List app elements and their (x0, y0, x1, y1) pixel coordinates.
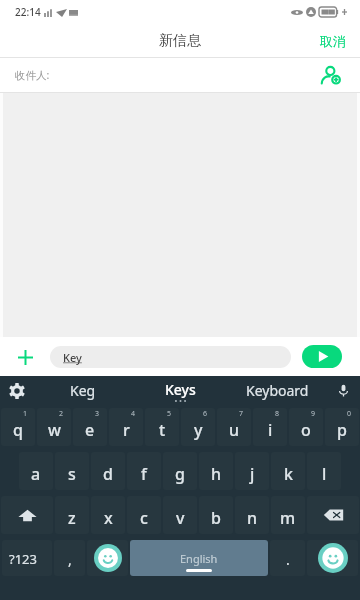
staticText: b (211, 507, 221, 529)
button[interactable]: r (109, 408, 143, 446)
button[interactable]: k (271, 452, 305, 490)
staticText: o (301, 419, 311, 441)
staticText: 6 (203, 409, 208, 419)
staticText: n (247, 507, 258, 529)
staticText: 7 (239, 409, 244, 419)
staticText: 1 (23, 409, 28, 419)
staticText: Keyboard (246, 381, 309, 400)
staticText: f (141, 463, 147, 485)
button[interactable]: Emoji picker (307, 540, 358, 576)
button[interactable]: p (325, 408, 359, 446)
button[interactable]: Keyboard (229, 376, 326, 405)
button[interactable]: Send (302, 345, 342, 368)
staticText: x (104, 507, 113, 529)
button[interactable]: o (289, 408, 323, 446)
button[interactable]: m (271, 496, 305, 534)
button[interactable]: English (130, 540, 268, 576)
staticText: j (250, 463, 255, 485)
staticText: r (123, 419, 130, 441)
button[interactable]: t (145, 408, 179, 446)
staticText: 2 (59, 409, 64, 419)
button[interactable]: Add attachment (10, 342, 40, 372)
staticText: i (268, 419, 273, 441)
button[interactable]: x (91, 496, 125, 534)
staticText: Key (63, 350, 82, 365)
button[interactable]: w (37, 408, 71, 446)
staticText: u (229, 419, 240, 441)
staticText: 取消 (320, 33, 346, 49)
button[interactable]: q (1, 408, 35, 446)
staticText: v (176, 507, 185, 529)
button[interactable]: , (54, 540, 85, 576)
button[interactable]: a (19, 452, 53, 490)
staticText: e (85, 419, 95, 441)
staticText: t (159, 419, 166, 441)
staticText: 新信息 (159, 32, 201, 50)
staticText: 3 (95, 409, 100, 419)
button[interactable]: Emoji (87, 540, 128, 576)
staticText: 8 (275, 409, 280, 419)
button[interactable]: s (55, 452, 89, 490)
button[interactable]: . (270, 540, 305, 576)
button[interactable]: Shift (1, 496, 53, 534)
button[interactable]: 取消 (306, 24, 360, 57)
staticText: Keys (165, 380, 196, 399)
staticText: w (48, 419, 61, 441)
button[interactable]: y (181, 408, 215, 446)
staticText: g (175, 463, 185, 485)
staticText: 5 (167, 409, 172, 419)
button[interactable]: d (91, 452, 125, 490)
staticText: Keg (70, 381, 96, 400)
button[interactable]: Add recipient (306, 58, 360, 92)
staticText: English (180, 551, 218, 566)
staticText: l (322, 463, 327, 485)
button[interactable]: i (253, 408, 287, 446)
staticText: a (31, 463, 41, 485)
staticText: ?123 (9, 550, 37, 568)
button[interactable]: z (55, 496, 89, 534)
button[interactable]: n (235, 496, 269, 534)
staticText: s (68, 463, 76, 485)
staticText: p (337, 419, 347, 441)
button[interactable]: Backspace (307, 496, 359, 534)
staticText: . (286, 550, 290, 569)
button[interactable]: e (73, 408, 107, 446)
button[interactable]: g (163, 452, 197, 490)
button[interactable]: c (127, 496, 161, 534)
button[interactable]: Key (50, 346, 291, 368)
staticText: , (68, 550, 72, 569)
staticText: m (280, 507, 296, 529)
button[interactable]: f (127, 452, 161, 490)
button[interactable]: ?123 (2, 540, 52, 576)
button[interactable]: v (163, 496, 197, 534)
staticText: z (68, 507, 76, 529)
button[interactable]: b (199, 496, 233, 534)
button[interactable]: l (307, 452, 341, 490)
staticText: k (284, 463, 293, 485)
staticText: d (103, 463, 113, 485)
button[interactable]: h (199, 452, 233, 490)
staticText: c (140, 507, 148, 529)
button[interactable]: Keys (132, 376, 229, 405)
staticText: h (211, 463, 222, 485)
staticText: y (194, 419, 203, 441)
button[interactable]: j (235, 452, 269, 490)
staticText: 0 (347, 409, 352, 419)
staticText: 22:14 (15, 5, 41, 19)
staticText: q (13, 419, 23, 441)
staticText: 9 (311, 409, 316, 419)
button[interactable]: u (217, 408, 251, 446)
staticText: 4 (131, 409, 136, 419)
button[interactable]: Keyboard settings (0, 376, 34, 405)
staticText: 收件人: (15, 68, 50, 82)
button[interactable]: Keg (34, 376, 132, 405)
button[interactable]: Voice input (326, 376, 360, 405)
